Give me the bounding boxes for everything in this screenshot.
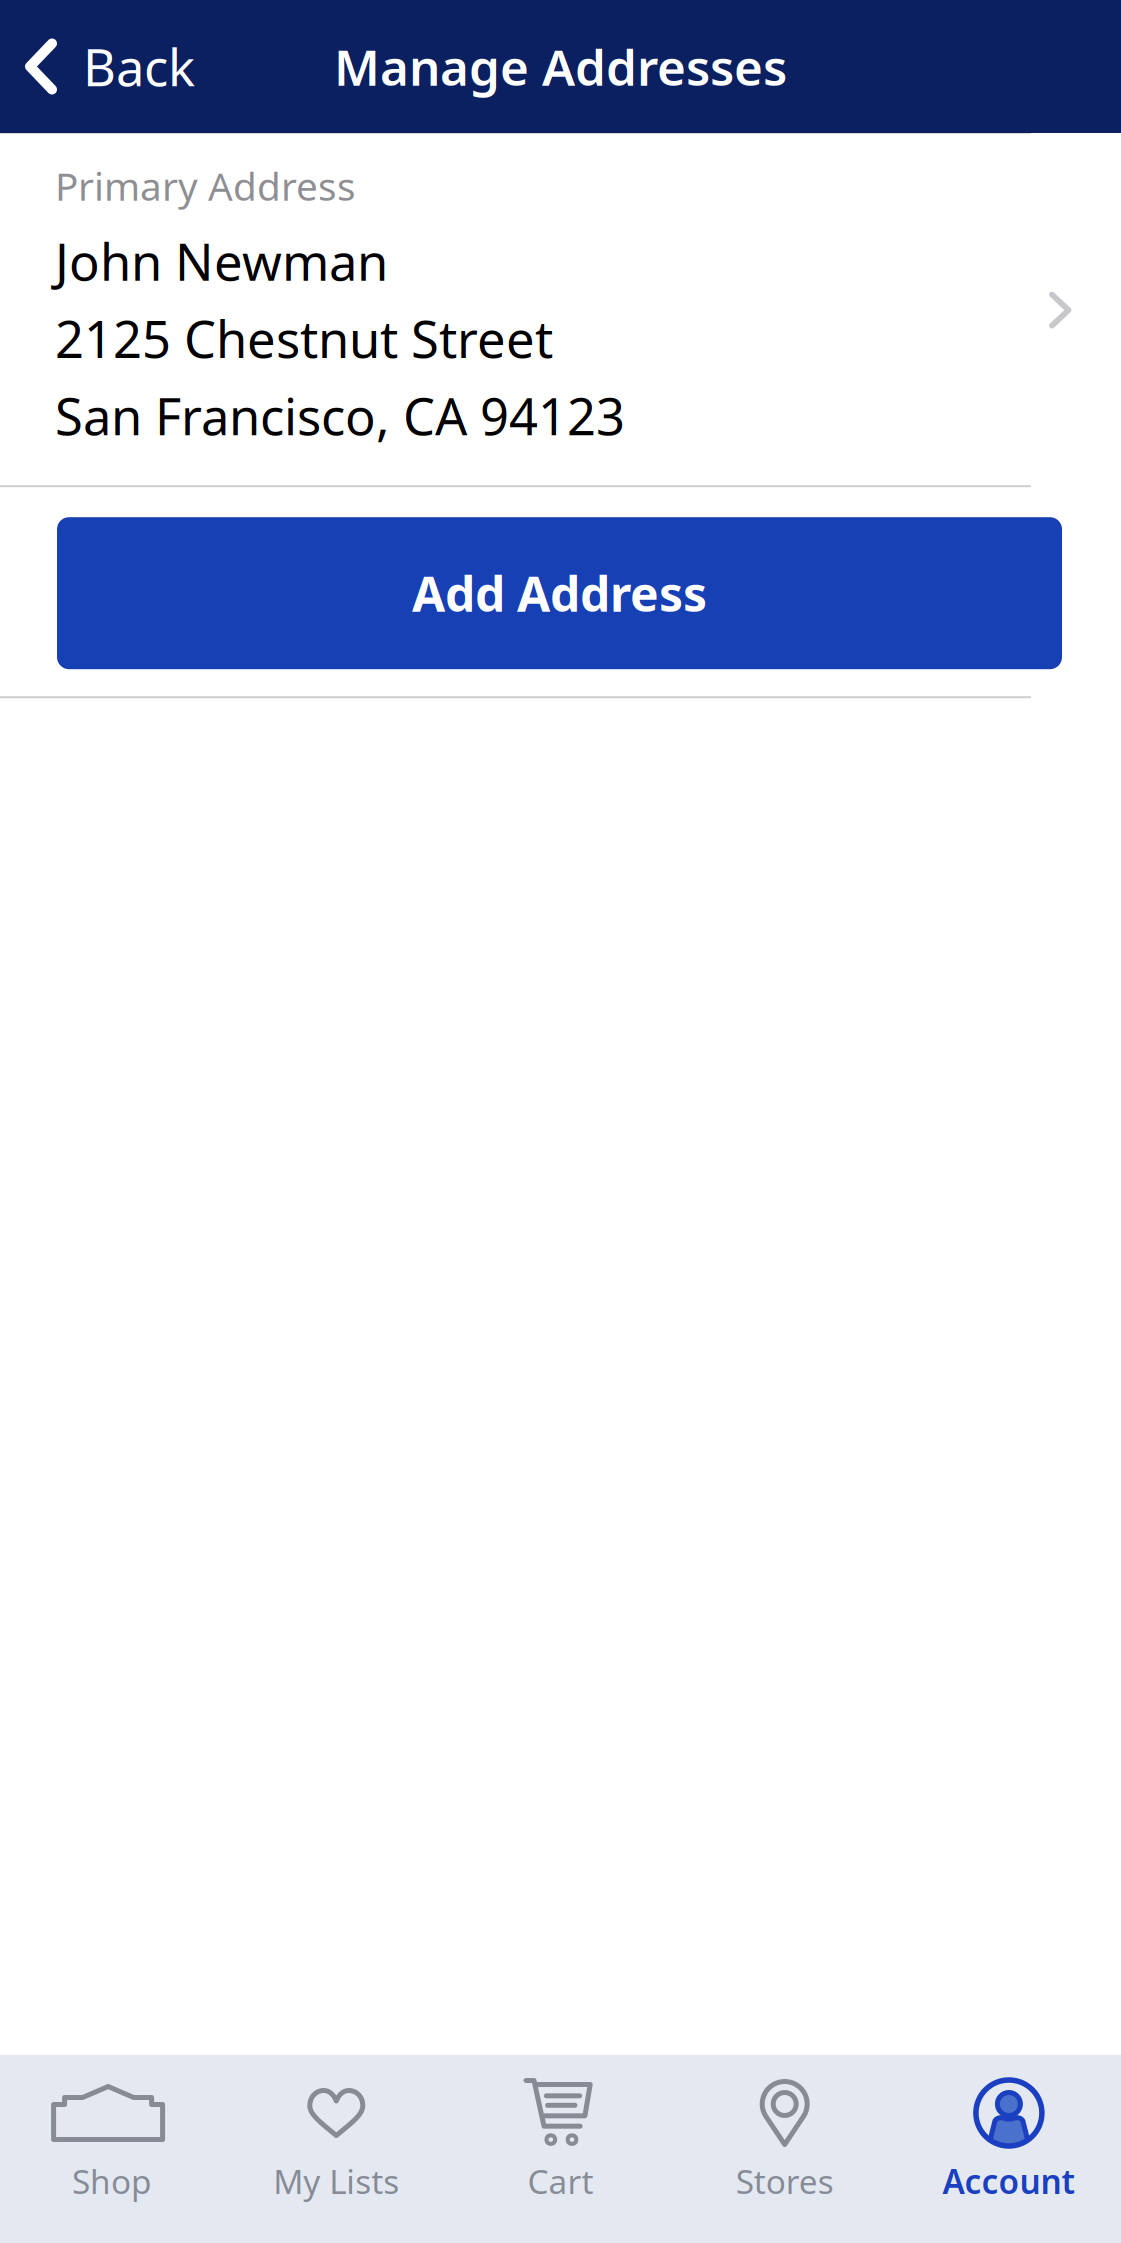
staticText: Account	[942, 2159, 1075, 2203]
button[interactable]: Add Address	[57, 517, 1062, 669]
staticText: Shop	[72, 2159, 152, 2203]
staticText: Primary Address	[55, 160, 356, 211]
button[interactable]: Stores	[673, 2055, 897, 2243]
staticText: Cart	[527, 2159, 593, 2203]
button[interactable]: Shop	[0, 2055, 224, 2243]
button[interactable]: My Lists	[224, 2055, 448, 2243]
staticText: 2125 Chestnut Street	[55, 305, 553, 372]
staticText: Manage Addresses	[334, 34, 787, 99]
staticText: San Francisco, CA 94123	[55, 382, 625, 449]
button[interactable]: Primary Address	[0, 134, 1121, 485]
staticText: John Newman	[55, 227, 388, 295]
button[interactable]: Back	[0, 9, 195, 124]
staticText: Add Address	[412, 561, 707, 625]
staticText: My Lists	[273, 2159, 399, 2203]
button[interactable]: Account	[897, 2055, 1121, 2243]
button[interactable]: Cart	[448, 2055, 673, 2243]
staticText: Stores	[736, 2159, 834, 2203]
staticText: Back	[83, 33, 195, 100]
